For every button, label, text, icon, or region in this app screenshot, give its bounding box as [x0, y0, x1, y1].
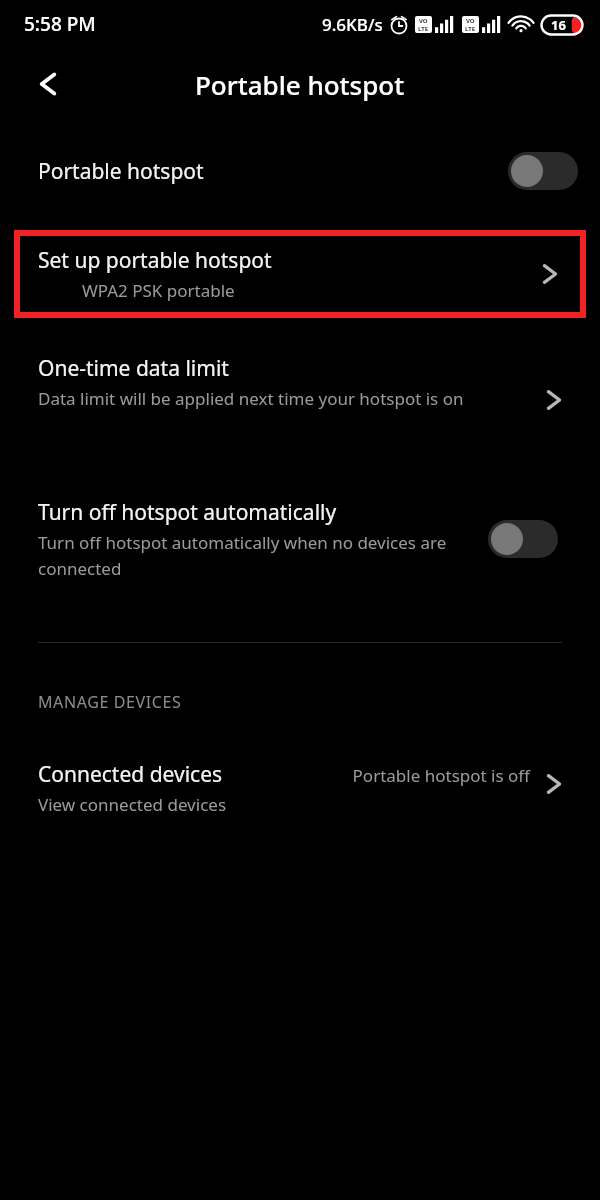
- staticText: MANAGE DEVICES: [38, 691, 182, 713]
- staticText: VO: [466, 17, 475, 25]
- button[interactable]: One-time data limit: [0, 348, 600, 458]
- staticText: 9.6KB/s: [322, 13, 383, 36]
- button[interactable]: Back: [26, 62, 70, 106]
- staticText: LTE: [418, 25, 429, 33]
- staticText: WPA2 PSK portable: [82, 279, 235, 302]
- staticText: Turn off hotspot automatically when no d…: [38, 531, 458, 580]
- staticText: LTE: [465, 25, 476, 33]
- button[interactable]: Toggle: [508, 152, 578, 190]
- staticText: Portable hotspot is off: [350, 764, 530, 787]
- staticText: 16: [551, 16, 566, 34]
- button[interactable]: Turn off hotspot automatically: [0, 490, 600, 600]
- button[interactable]: Portable hotspot: [0, 128, 600, 214]
- button[interactable]: Set up portable hotspot: [14, 230, 586, 318]
- staticText: Portable hotspot: [195, 67, 405, 102]
- staticText: Set up portable hotspot: [38, 246, 272, 275]
- staticText: Data limit will be applied next time you…: [38, 387, 464, 410]
- button[interactable]: Toggle: [488, 520, 558, 558]
- staticText: View connected devices: [38, 793, 227, 816]
- staticText: One-time data limit: [38, 354, 229, 383]
- staticText: Portable hotspot: [38, 157, 204, 186]
- staticText: 5:58 PM: [24, 11, 96, 37]
- staticText: Connected devices: [38, 760, 223, 789]
- staticText: Turn off hotspot automatically: [38, 498, 337, 527]
- button[interactable]: Connected devices: [0, 748, 600, 834]
- staticText: VO: [419, 17, 428, 25]
